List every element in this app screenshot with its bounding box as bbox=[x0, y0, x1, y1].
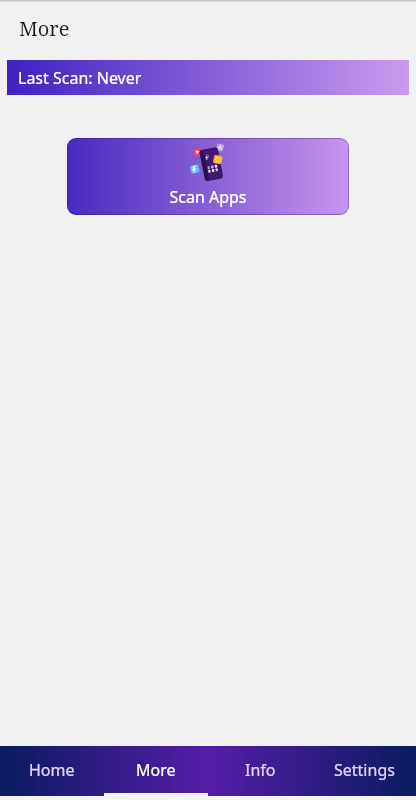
staticText: Home bbox=[29, 759, 75, 781]
staticText: Last Scan: Never bbox=[18, 67, 142, 89]
staticText: Info bbox=[245, 759, 276, 781]
staticText: Settings bbox=[334, 759, 395, 781]
button[interactable]: More bbox=[104, 746, 208, 800]
button[interactable]: Info bbox=[208, 746, 312, 800]
button[interactable]: Home bbox=[0, 746, 104, 800]
button[interactable]: Scan Apps bbox=[67, 138, 349, 215]
button[interactable]: Settings bbox=[312, 746, 416, 800]
staticText: Scan Apps bbox=[67, 186, 349, 208]
staticText: More bbox=[136, 759, 176, 781]
staticText: More bbox=[19, 15, 70, 42]
